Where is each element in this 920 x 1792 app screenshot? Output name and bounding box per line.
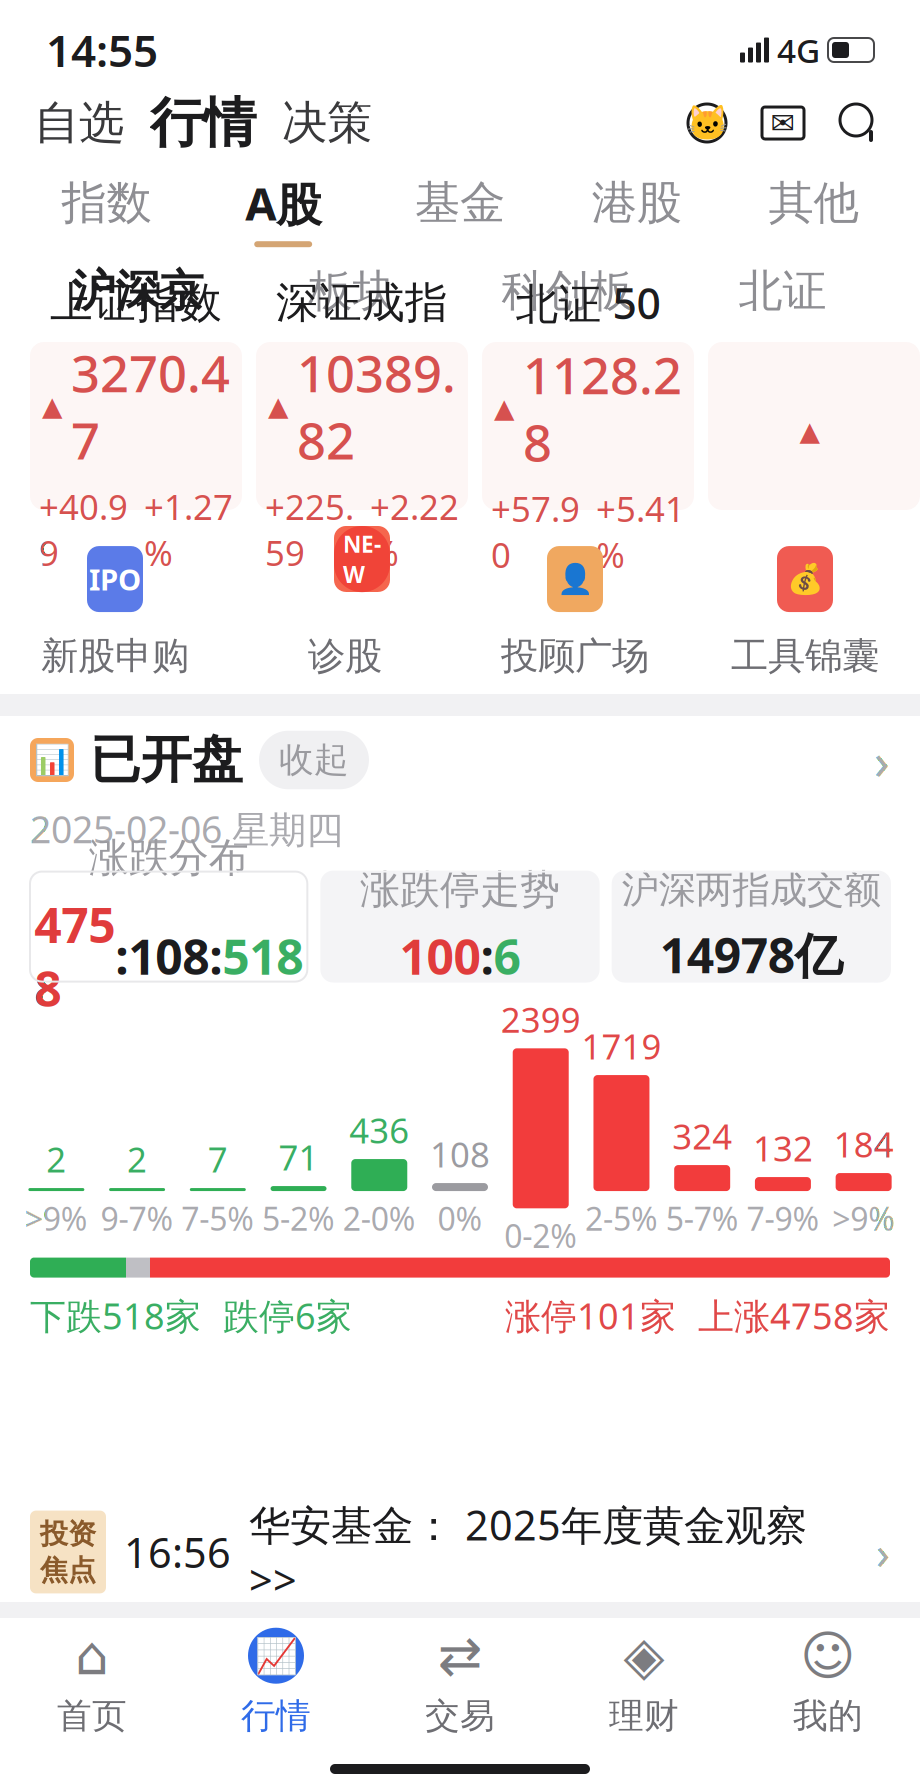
staticText: 下跌518家 [30,1292,201,1339]
staticText: 北证 50 [515,274,660,331]
button[interactable]: 📈 [184,1621,368,1743]
staticText: 决策 [282,95,372,151]
staticText: 沪深两指成交额 [622,867,881,913]
staticText: >9% [832,1197,895,1240]
staticText: 华安基金： 2025年度黄金观察>> [249,1497,807,1607]
staticText: 基金 [415,175,505,231]
button[interactable]: ☺ [736,1621,920,1743]
button[interactable]: 科创板 [460,256,675,326]
button[interactable]: 自选 [34,95,124,151]
staticText: +1.27% [144,483,233,576]
button[interactable]: ⇄ [368,1621,552,1743]
staticText: 7 [208,1136,228,1182]
staticText: ☺ [800,1625,856,1686]
staticText: 💰 [786,562,823,596]
staticText: 2025-02-06 星期四 [30,804,343,854]
staticText: 5-7% [666,1197,739,1240]
staticText: 7-9% [746,1197,819,1240]
button[interactable] [708,342,920,510]
staticText: 🐱 [685,103,728,143]
staticText: 诊股 [308,633,382,679]
staticText: 交易 [425,1695,495,1737]
staticText: ⌂ [75,1625,109,1686]
button[interactable]: 港股 [548,168,725,252]
staticText: 自选 [34,95,124,151]
button[interactable]: 机器人助手 [680,96,734,150]
button[interactable]: 基金 [372,168,548,252]
staticText: 投顾广场 [501,633,649,679]
button[interactable]: 💰 [690,528,920,690]
button[interactable]: A股 [195,168,372,252]
staticText: ▲ [268,391,289,421]
staticText: 👤 [556,562,593,596]
button[interactable]: 投资 [0,1502,920,1602]
staticText: A股 [245,173,321,233]
button[interactable]: 北证 [675,256,890,326]
button[interactable]: 沪深京 [30,256,245,326]
staticText: 行情 [150,90,256,156]
staticText: 涨跌停走势 [360,865,560,914]
staticText: 涨停101家 [505,1292,676,1339]
staticText: ▲ [494,393,515,423]
staticText: 深证成指 [276,276,448,329]
staticText: 7-5% [181,1197,254,1240]
staticText: 4G [777,28,820,72]
staticText: +5.41% [596,486,685,578]
button[interactable]: 涨跌停走势 [321,872,599,982]
staticText: ⇄ [437,1625,482,1686]
staticText: 132 [753,1125,813,1171]
staticText: 北证 [738,264,826,318]
button[interactable]: ◈ [552,1621,736,1743]
button[interactable]: 搜索 [832,96,886,150]
button[interactable]: 深证成指 [256,342,468,510]
staticText: 其他 [769,175,859,231]
button[interactable]: 上证指数 [30,342,242,510]
staticText: 16:56 [124,1525,231,1579]
staticText: +57.90 [491,486,580,578]
button[interactable]: 沪深两指成交额 [613,872,890,982]
button[interactable]: 板块 [245,256,460,326]
staticText: 184 [834,1121,894,1167]
staticText: 10389.82 [297,339,456,473]
staticText: 0% [437,1197,482,1240]
staticText: ✉ [770,106,795,140]
staticText: 科创板 [501,264,633,318]
staticText: : [115,924,128,988]
button[interactable]: 👤 [460,528,690,690]
staticText: 2-0% [343,1197,416,1240]
staticText: 9-7% [101,1197,174,1240]
staticText: 涨跌分布 [89,833,249,882]
button[interactable]: 📊 [0,716,920,804]
button[interactable]: 决策 [282,95,372,151]
button[interactable]: ⌂ [0,1621,184,1743]
staticText: 518 [222,924,303,988]
button[interactable]: 其他 [725,168,902,252]
staticText: 100 [399,924,480,988]
staticText: ◈ [623,1625,664,1686]
staticText: ▲ [42,391,63,421]
staticText: 4758 [34,892,115,1020]
staticText: 行情 [241,1695,311,1737]
staticText: 2 [127,1136,147,1182]
staticText: +2.22% [370,483,459,576]
staticText: 跌停6家 [223,1292,352,1339]
staticText: >9% [25,1197,88,1240]
staticText: +225.59 [265,483,354,576]
button[interactable]: 涨跌分布 [30,872,307,982]
button[interactable]: 行情 [124,90,282,156]
staticText: 港股 [592,175,682,231]
staticText: 0-2% [504,1214,577,1257]
staticText: 5-2% [262,1197,335,1240]
button[interactable]: 📋 [230,528,460,690]
staticText: 上证指数 [50,276,222,329]
staticText: 焦点 [40,1553,96,1587]
staticText: 2 [46,1136,66,1182]
button[interactable]: IPO [0,528,230,690]
staticText: 324 [672,1113,732,1159]
staticText: 108 [430,1131,490,1177]
button[interactable]: 消息 [734,96,832,150]
staticText: 1128.28 [523,341,682,476]
button[interactable]: 北证 50 [482,342,694,510]
staticText: : [480,924,493,988]
button[interactable]: 指数 [18,168,195,252]
